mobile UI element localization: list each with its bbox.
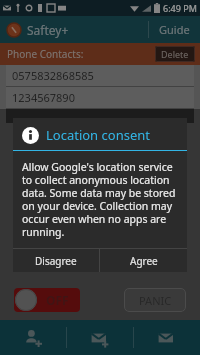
staticText: Delete: [161, 48, 189, 60]
staticText: PANIC: [139, 293, 172, 308]
staticText: Phone Contacts:: [7, 47, 84, 61]
staticText: Guide: [159, 22, 190, 37]
staticText: OFF: [46, 292, 69, 308]
staticText: 6:49 PM: [163, 2, 197, 14]
button[interactable]: Add contact: [0, 320, 66, 355]
button[interactable]: 0575832868585: [6, 65, 194, 86]
button[interactable]: PANIC: [124, 288, 186, 312]
button[interactable]: OFF: [14, 288, 80, 312]
staticText: Agree: [130, 254, 158, 268]
staticText: Disagree: [35, 254, 77, 268]
button[interactable]: Messages: [134, 320, 200, 355]
button[interactable]: Delete: [155, 46, 195, 62]
staticText: 1234567890: [12, 90, 75, 105]
button[interactable]: 1234567890: [6, 87, 194, 108]
button[interactable]: Saftey+: [7, 22, 69, 38]
staticText: Allow Google's location service to colle…: [22, 160, 178, 239]
staticText: Location consent: [46, 126, 150, 144]
button[interactable]: Guide: [148, 16, 200, 43]
staticText: Saftey+: [27, 22, 69, 38]
staticText: 0575832868585: [12, 68, 94, 83]
button[interactable]: Disagree: [13, 249, 99, 272]
button[interactable]: Agree: [100, 249, 187, 272]
button[interactable]: New message: [67, 320, 133, 355]
